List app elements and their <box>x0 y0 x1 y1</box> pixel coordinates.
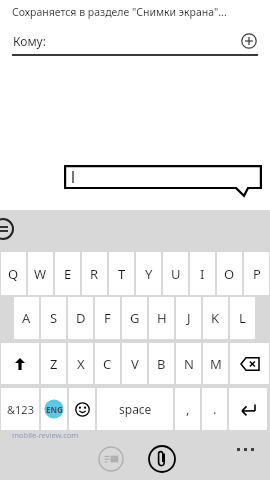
button[interactable]: M <box>203 343 228 384</box>
button[interactable]: A <box>14 297 39 339</box>
staticText: J <box>187 309 191 327</box>
staticText: Кому: <box>13 33 46 49</box>
staticText: Q <box>8 265 19 283</box>
staticText: space <box>119 401 152 417</box>
button[interactable]: , <box>175 388 200 430</box>
staticText: X <box>77 355 85 373</box>
button[interactable]: K <box>203 297 228 339</box>
staticText: A <box>22 309 31 327</box>
staticText: . <box>213 400 217 418</box>
staticText: K <box>211 309 220 327</box>
button[interactable]: F <box>95 297 120 339</box>
staticText: S <box>50 309 58 327</box>
staticText: ENG <box>46 404 63 415</box>
staticText: T <box>118 265 126 283</box>
button[interactable] <box>230 343 269 384</box>
staticText: R <box>90 265 99 283</box>
button[interactable] <box>69 388 95 430</box>
button[interactable]: H <box>149 297 174 339</box>
staticText: F <box>104 309 111 327</box>
button[interactable]: space <box>97 388 173 430</box>
button[interactable]: O <box>217 252 242 295</box>
button[interactable]: C <box>95 343 120 384</box>
button[interactable] <box>229 388 267 430</box>
button[interactable]: N <box>176 343 201 384</box>
button[interactable]: L <box>230 297 255 339</box>
staticText: Y <box>145 265 153 283</box>
staticText: &123 <box>7 402 34 417</box>
button[interactable]: B <box>149 343 174 384</box>
staticText: P <box>253 265 261 283</box>
staticText: C <box>103 355 112 373</box>
button[interactable]: E <box>55 252 80 295</box>
staticText: O <box>224 265 235 283</box>
button[interactable]: Add recipient <box>238 30 260 52</box>
button[interactable]: Q <box>1 252 26 295</box>
staticText: E <box>64 265 72 283</box>
staticText: U <box>171 265 181 283</box>
staticText: V <box>131 355 139 373</box>
staticText: mobile-review.com <box>12 430 79 440</box>
staticText: D <box>76 309 86 327</box>
button[interactable]: V <box>122 343 147 384</box>
button[interactable]: R <box>82 252 107 295</box>
button[interactable]: &123 <box>1 388 39 430</box>
button[interactable]: Y <box>136 252 161 295</box>
button[interactable]: P <box>244 252 269 295</box>
button[interactable]: ENG <box>41 388 67 430</box>
button[interactable]: I <box>190 252 215 295</box>
staticText: H <box>157 309 167 327</box>
staticText: I <box>200 265 205 283</box>
button[interactable]: . <box>202 388 227 430</box>
button[interactable]: G <box>122 297 147 339</box>
staticText: , <box>186 400 190 418</box>
staticText: Сохраняется в разделе "Снимки экрана"... <box>12 5 227 19</box>
button[interactable]: D <box>68 297 93 339</box>
staticText: W <box>34 265 47 283</box>
staticText: B <box>157 355 166 373</box>
button[interactable]: J <box>176 297 201 339</box>
button[interactable]: U <box>163 252 188 295</box>
button[interactable]: W <box>28 252 53 295</box>
staticText: Z <box>50 355 58 373</box>
staticText: G <box>130 309 140 327</box>
staticText: M <box>210 355 222 373</box>
button[interactable]: X <box>68 343 93 384</box>
button[interactable]: More options <box>231 444 260 455</box>
button[interactable]: Send <box>96 444 126 474</box>
staticText: L <box>239 309 246 327</box>
button[interactable]: S <box>41 297 66 339</box>
button[interactable]: Attach <box>146 443 178 475</box>
staticText: N <box>184 355 194 373</box>
button[interactable]: T <box>109 252 134 295</box>
button[interactable] <box>1 343 39 384</box>
button[interactable]: Z <box>41 343 66 384</box>
